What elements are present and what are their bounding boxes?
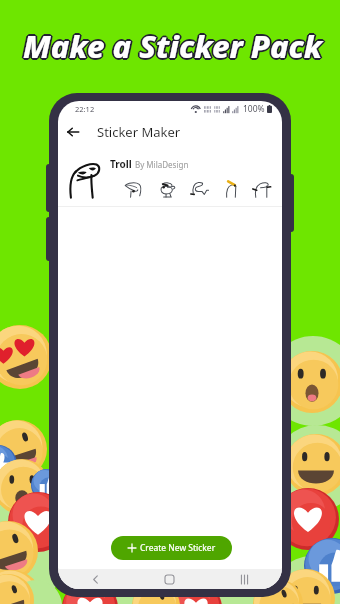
staticText: Make a Sticker Pack — [24, 24, 324, 66]
button[interactable]: Home — [132, 569, 207, 589]
button[interactable]: Back — [61, 120, 85, 144]
staticText: Make a Sticker Pack — [24, 24, 324, 66]
button[interactable]: Back — [58, 569, 132, 589]
staticText: Make a Sticker Pack — [21, 25, 321, 67]
staticText: Make a Sticker Pack — [22, 26, 322, 68]
button[interactable]: Create New Sticker — [111, 536, 232, 560]
staticText: 22:12 — [75, 104, 95, 114]
staticText: Create New Sticker — [140, 542, 216, 554]
button[interactable]: Recents — [207, 569, 282, 589]
staticText: Make a Sticker Pack — [24, 26, 324, 68]
staticText: Make a Sticker Pack — [25, 25, 325, 67]
staticText: 100% — [243, 103, 265, 115]
staticText: Make a Sticker Pack — [23, 27, 323, 69]
staticText: Make a Sticker Pack — [23, 25, 323, 67]
staticText: Sticker Maker — [97, 123, 181, 141]
staticText: Make a Sticker Pack — [22, 24, 322, 66]
staticText: Make a Sticker Pack — [24, 26, 324, 68]
staticText: By MilaDesign — [135, 159, 189, 170]
staticText: Make a Sticker Pack — [22, 24, 322, 66]
staticText: Make a Sticker Pack — [22, 26, 322, 68]
staticText: Troll — [110, 157, 132, 171]
staticText: Make a Sticker Pack — [23, 23, 323, 65]
